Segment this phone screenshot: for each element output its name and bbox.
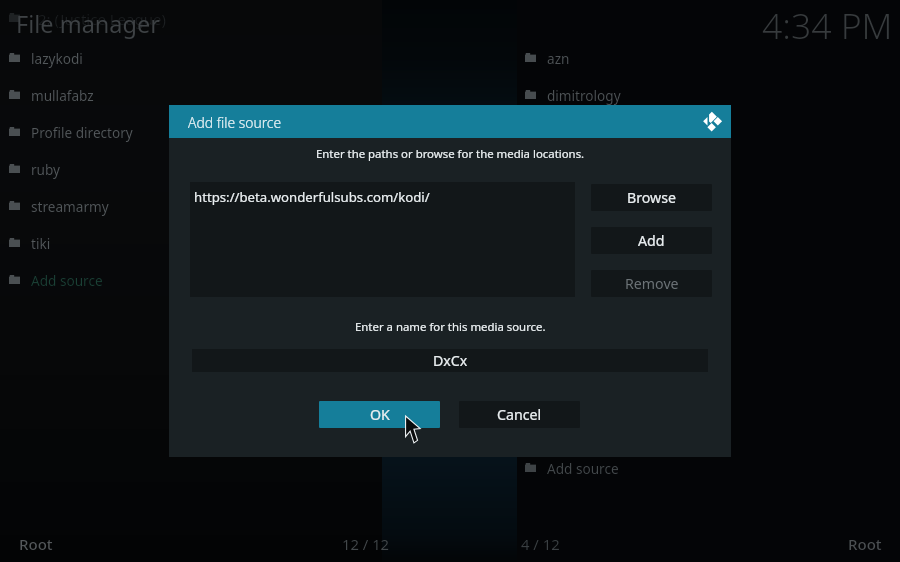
button[interactable]: Add source (516, 450, 886, 487)
staticText: Remove (625, 274, 679, 293)
staticText: dimitrology (547, 86, 621, 105)
staticText: 2: (Justice League) (38, 9, 166, 29)
staticText: OK (370, 405, 390, 424)
button[interactable]: DxCx (192, 349, 708, 372)
staticText: Add source (547, 459, 619, 478)
staticText: lazykodi (31, 49, 83, 68)
button[interactable]: streamarmy (0, 188, 370, 225)
staticText: File manager (16, 8, 160, 40)
staticText: mullafabz (31, 86, 94, 105)
staticText: Profile directory (31, 123, 133, 142)
button[interactable]: OK (319, 401, 440, 428)
button[interactable]: Profile directory (0, 114, 370, 151)
staticText: Add source (31, 271, 103, 290)
staticText: Enter a name for this media source. (355, 319, 546, 335)
staticText: 4:34 PM (762, 1, 893, 49)
button[interactable]: https://beta.wonderfulsubs.com/kodi/ (190, 182, 575, 297)
staticText: streamarmy (31, 197, 109, 216)
button[interactable]: Remove (591, 270, 712, 297)
other: Kodi (700, 110, 723, 133)
button[interactable]: dimitrology (516, 77, 886, 114)
staticText: tiki (31, 234, 51, 253)
button[interactable]: tiki (0, 225, 370, 262)
button[interactable]: Add (591, 227, 712, 254)
button[interactable]: Browse (591, 184, 712, 211)
button[interactable]: mullafabz (0, 77, 370, 114)
staticText: Root (19, 534, 53, 554)
button[interactable]: Cancel (459, 401, 580, 428)
staticText: Root (848, 534, 882, 554)
staticText: Cancel (497, 405, 542, 424)
button[interactable]: lazykodi (0, 40, 370, 77)
staticText: DxCx (433, 351, 468, 370)
staticText: https://beta.wonderfulsubs.com/kodi/ (194, 188, 430, 206)
staticText: 4 / 12 (521, 534, 560, 554)
staticText: 12 / 12 (342, 534, 390, 554)
staticText: Add file source (188, 113, 282, 132)
button[interactable]: Add source (0, 262, 370, 299)
staticText: Browse (627, 188, 677, 207)
button[interactable]: azn (516, 40, 886, 77)
staticText: ruby (31, 160, 61, 179)
staticText: azn (547, 49, 570, 68)
staticText: Enter the paths or browse for the media … (316, 146, 585, 162)
button[interactable]: ruby (0, 151, 370, 188)
staticText: Add (638, 231, 665, 250)
